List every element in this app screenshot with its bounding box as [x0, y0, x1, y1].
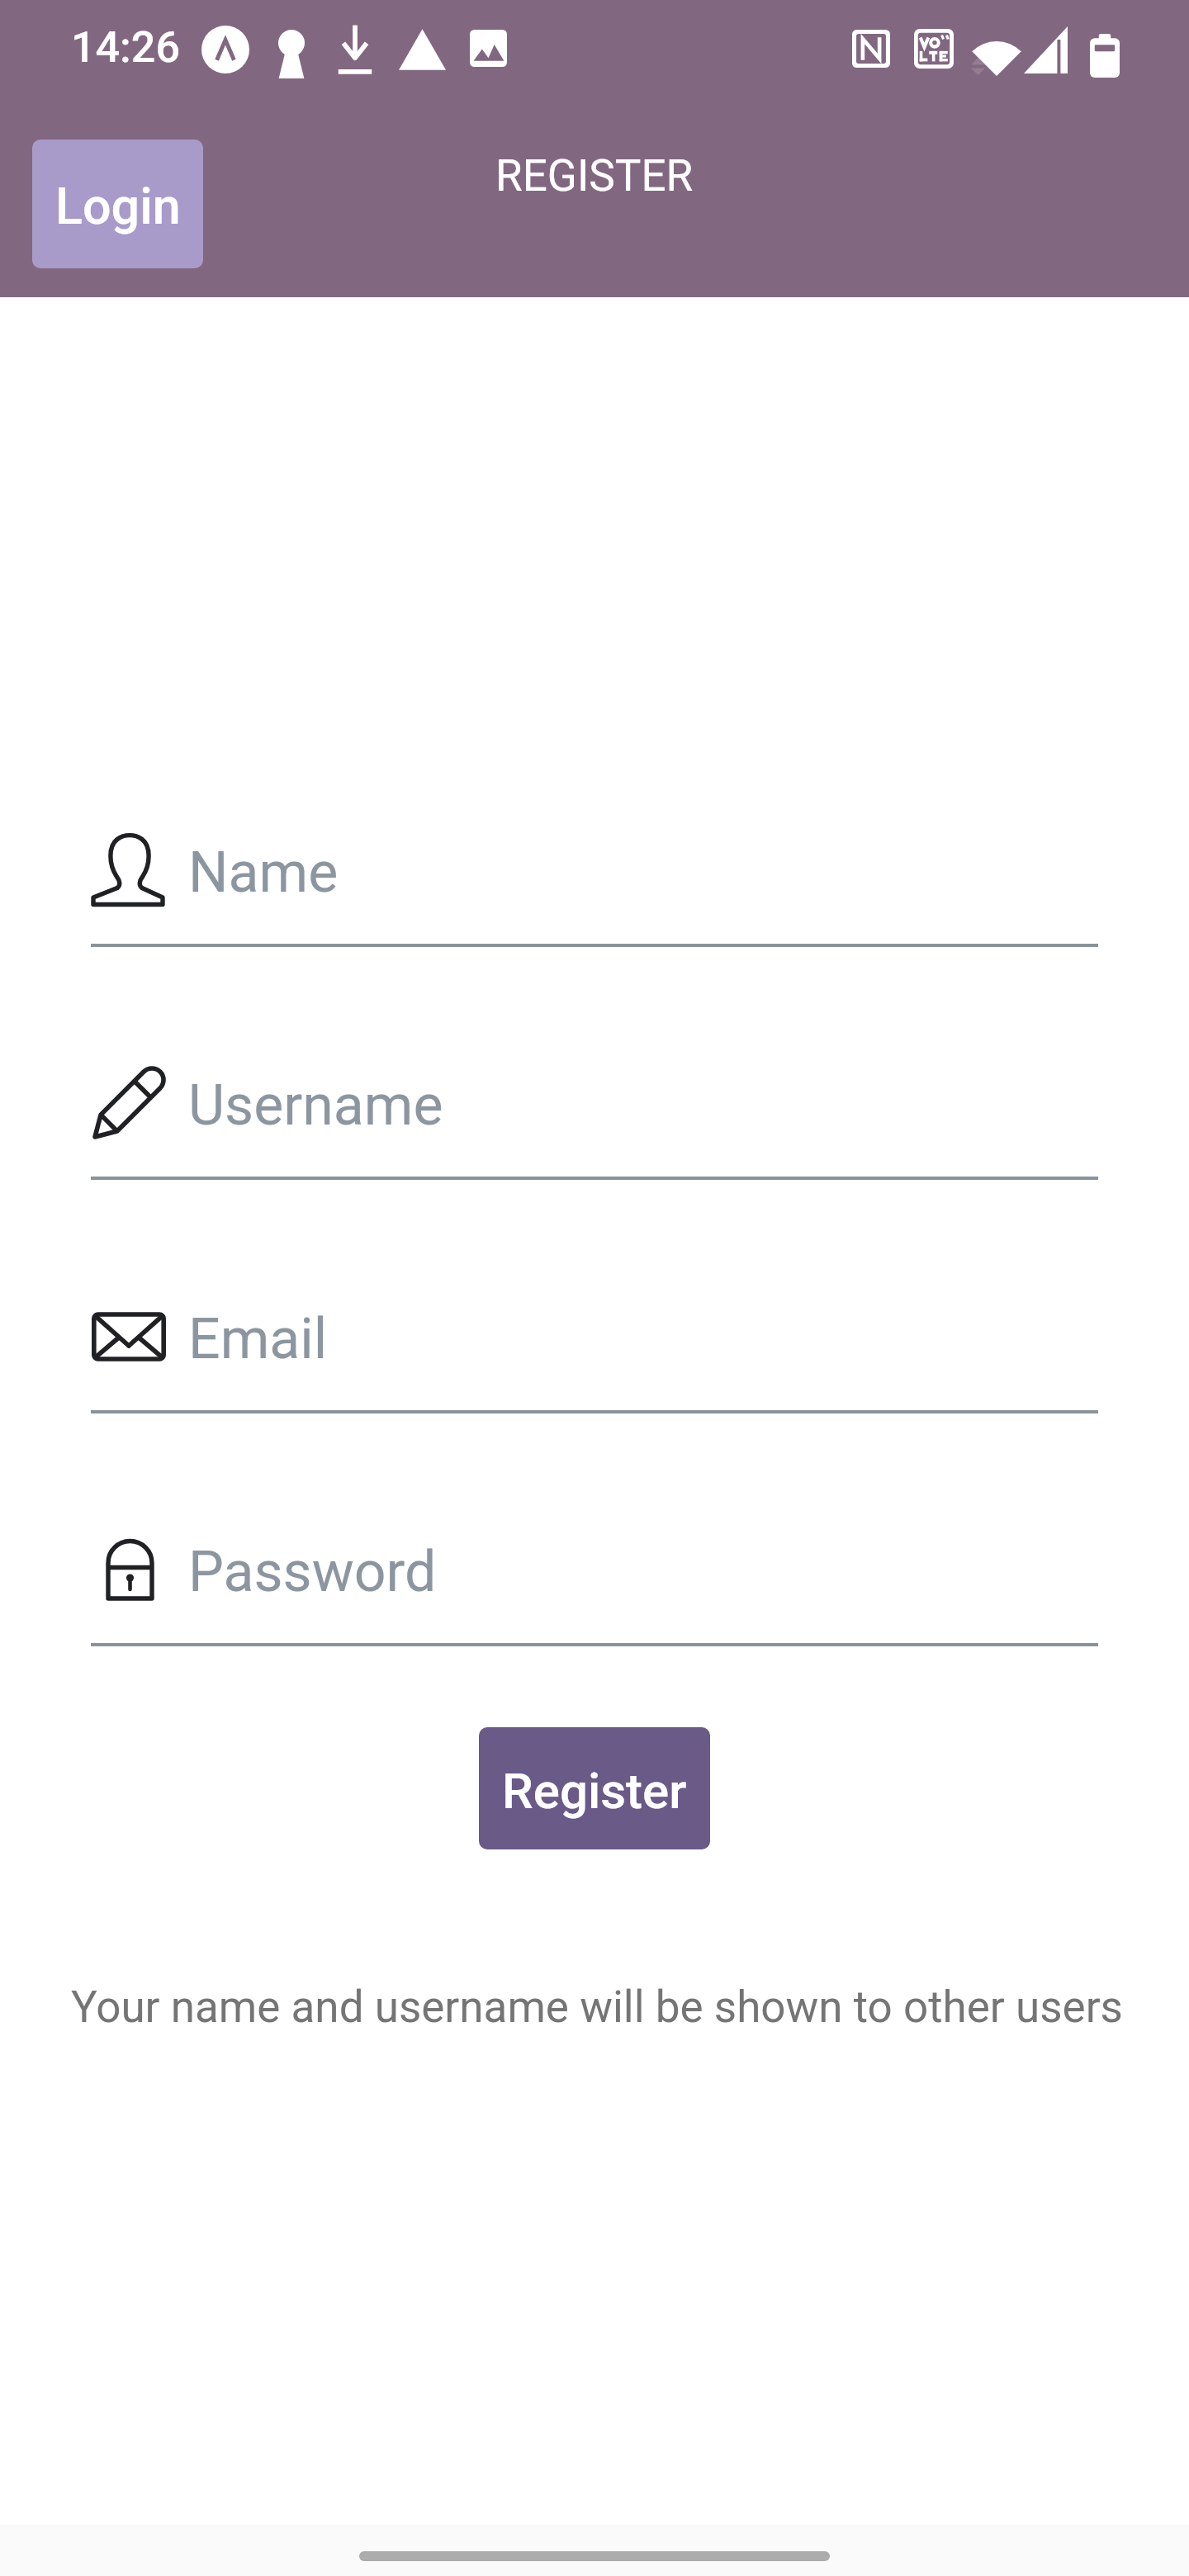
staticText: REGISTER — [495, 150, 694, 201]
other: Name — [91, 832, 167, 908]
button[interactable]: Email — [91, 1299, 1098, 1412]
other: Email — [91, 1299, 167, 1375]
button[interactable]: Password — [91, 1532, 1098, 1645]
button[interactable]: Name — [91, 832, 1098, 945]
staticText: Name — [188, 840, 339, 906]
staticText: Username — [188, 1073, 443, 1139]
button[interactable]: Register — [479, 1727, 710, 1849]
other: Password — [91, 1532, 167, 1608]
staticText: Your name and username will be shown to … — [71, 1982, 1123, 2033]
button[interactable]: Username — [91, 1065, 1098, 1178]
staticText: Register — [502, 1762, 687, 1820]
staticText: 14:26 — [71, 22, 180, 73]
staticText: Login — [55, 177, 181, 235]
button[interactable]: Login — [32, 140, 203, 268]
staticText: Password — [188, 1539, 437, 1605]
staticText: Email — [188, 1306, 328, 1372]
other: Username — [91, 1065, 167, 1141]
